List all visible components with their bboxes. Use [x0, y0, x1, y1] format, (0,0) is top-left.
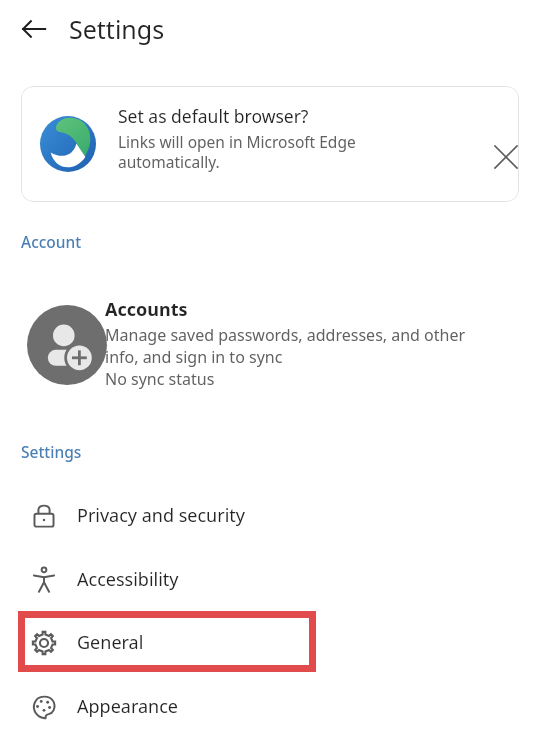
staticText: Privacy and security — [77, 503, 245, 528]
button[interactable]: Set as default browser? — [21, 86, 519, 202]
staticText: Links will open in Microsoft Edge automa… — [118, 131, 428, 173]
staticText: Settings — [69, 12, 165, 46]
staticText: Settings — [21, 441, 82, 462]
staticText: General — [77, 630, 144, 655]
staticText: Manage saved passwords, addresses, and o… — [105, 324, 495, 368]
button[interactable]: Privacy and security — [0, 485, 539, 546]
staticText: Accessibility — [77, 567, 179, 592]
staticText: Accounts — [105, 297, 188, 322]
button[interactable]: Accessibility — [0, 549, 539, 610]
staticText: Set as default browser? — [118, 104, 309, 128]
staticText: Account — [21, 231, 82, 252]
staticText: Appearance — [77, 694, 178, 719]
staticText: No sync status — [105, 368, 215, 390]
button[interactable]: Dismiss — [480, 131, 519, 183]
button[interactable]: Back — [10, 5, 58, 53]
button[interactable]: Accounts — [0, 280, 539, 405]
button[interactable]: Appearance — [0, 676, 539, 737]
button[interactable]: General — [0, 612, 539, 673]
